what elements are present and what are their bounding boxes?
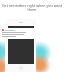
button[interactable] (1, 28, 39, 39)
staticText: Get reminders right when you want them (0, 3, 64, 12)
